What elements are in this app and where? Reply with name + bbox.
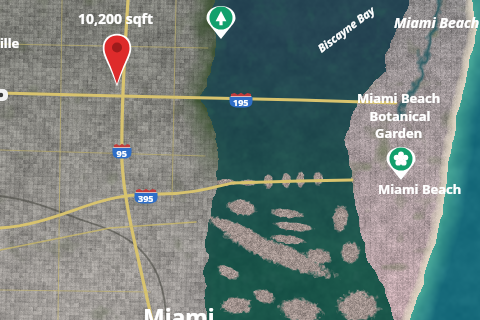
button[interactable]: Map: [0, 0, 480, 320]
